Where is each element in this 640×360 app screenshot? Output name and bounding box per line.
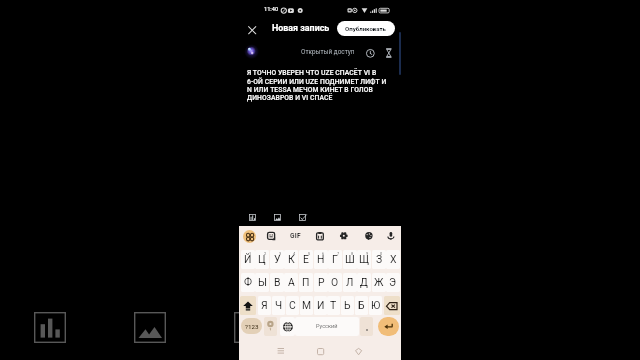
button[interactable]: Н [314,250,328,269]
staticText: Новая запись [272,23,330,33]
button[interactable]: Backspace [384,296,400,315]
staticText: Л [346,276,354,288]
staticText: Ц [258,253,266,265]
staticText: О [331,276,339,288]
button[interactable]: Close [243,21,260,38]
button[interactable]: В [270,273,284,292]
staticText: М [302,299,312,311]
button[interactable]: ?123 [241,318,262,334]
button[interactable]: Ц [255,250,269,269]
button[interactable]: И [314,296,327,315]
button[interactable]: Back [352,345,364,357]
button[interactable]: Ы [255,273,269,292]
staticText: Т [330,299,337,311]
button[interactable]: Т [327,296,340,315]
button[interactable]: К [284,250,298,269]
button[interactable]: Poll [244,209,260,225]
button[interactable]: Б [355,296,368,315]
button[interactable]: Settings [337,229,351,243]
staticText: Ю [371,299,381,311]
staticText: В [274,276,281,288]
staticText: 8 [351,251,354,256]
button[interactable]: Ч [272,296,285,315]
button[interactable]: Voice input [384,229,398,243]
staticText: З [376,253,383,265]
staticText: Ф [244,276,253,288]
staticText: 0 [380,251,383,256]
staticText: Ь [344,299,351,311]
button[interactable]: С [286,296,299,315]
staticText: Ы [258,276,267,288]
button[interactable]: О [328,273,342,292]
button[interactable]: Period [360,317,373,336]
button[interactable]: А [284,273,298,292]
button[interactable]: Photo [269,209,285,225]
staticText: 4 [293,251,296,256]
button[interactable]: Опубликовать [337,21,395,36]
button[interactable]: Д [357,273,371,292]
staticText: 3 [279,251,282,256]
button[interactable]: Е [299,250,313,269]
button[interactable]: Shift [240,296,256,315]
button[interactable]: Change language [280,317,295,336]
button[interactable]: Home [314,345,326,357]
staticText: Щ [359,253,370,265]
button[interactable]: Ь [341,296,354,315]
staticText: П [302,276,310,288]
staticText: У [274,253,281,265]
button[interactable]: Ю [369,296,382,315]
button[interactable]: У [270,250,284,269]
staticText: Й [244,253,252,265]
staticText: 11:40 [264,6,279,13]
staticText: Б [358,299,365,311]
button[interactable]: Schedule [364,47,376,59]
button[interactable]: Й [241,250,255,269]
staticText: 1 [249,251,252,256]
staticText: Н [317,253,325,265]
button[interactable]: Clipboard [313,229,327,243]
button[interactable]: Ж [372,273,386,292]
button[interactable]: Л [343,273,357,292]
staticText: Русский [316,323,338,330]
button[interactable]: Drafts [383,47,395,59]
staticText: Е [303,253,309,265]
button[interactable]: Я [258,296,271,315]
staticText: 7 [337,251,340,256]
staticText: Р [318,276,325,288]
staticText: С [289,299,296,311]
button[interactable]: Р [314,273,328,292]
button[interactable]: П [299,273,313,292]
staticText: Опубликовать [345,25,387,32]
button[interactable]: Ф [241,273,255,292]
button[interactable]: Г [328,250,342,269]
button[interactable]: Keyboard menu [243,230,256,243]
staticText: GIF [290,232,301,240]
button[interactable]: М [300,296,313,315]
button[interactable]: Э [386,273,400,292]
staticText: Д [360,276,368,288]
button[interactable]: З [372,250,386,269]
button[interactable]: Themes [362,229,376,243]
button[interactable]: Checklist [294,209,310,225]
staticText: Ж [374,276,384,288]
staticText: ?123 [245,323,259,330]
staticText: 6 [322,251,325,256]
staticText: Г [332,253,338,265]
button[interactable]: Ш [343,250,357,269]
button[interactable]: Stickers [264,229,278,243]
button[interactable]: Emoji [264,317,277,336]
staticText: Открытый доступ [301,48,355,56]
button[interactable]: Enter [378,317,399,336]
button[interactable]: Х [386,250,400,269]
staticText: 5 [308,251,311,256]
staticText: 9 [366,251,369,256]
staticText: Х [390,253,397,265]
staticText: Ч [275,299,283,311]
staticText: А [288,276,295,288]
staticText: Я ТОЧНО УВЕРЕН ЧТО UZE СПАСЁТ VI В 6-ОЙ … [247,69,387,101]
staticText: Э [389,276,397,288]
button[interactable]: Recents [275,345,287,357]
button[interactable]: Щ [357,250,371,269]
button[interactable]: Русский [295,317,359,336]
button[interactable]: Profile picture [245,45,261,61]
